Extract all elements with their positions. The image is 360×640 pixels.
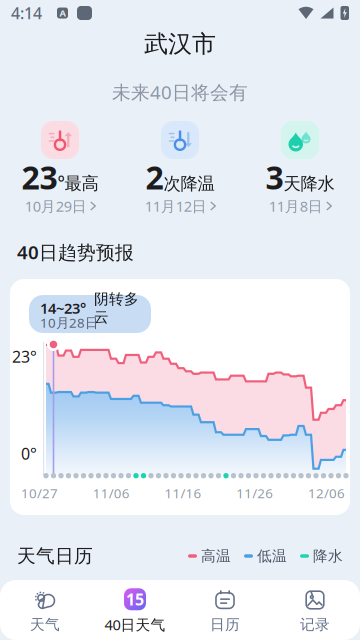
staticText: °最高 <box>57 171 98 194</box>
staticText: 11/16 <box>164 484 201 502</box>
staticText: A <box>59 7 65 19</box>
staticText: 40日天气 <box>104 615 165 634</box>
staticText: 0° <box>21 443 37 464</box>
staticText: 10月28日 <box>40 314 98 331</box>
button[interactable]: 记录 <box>270 580 360 640</box>
staticText: 天气日历 <box>17 544 93 567</box>
button[interactable]: 2 <box>120 121 240 213</box>
staticText: 10月29日 <box>25 196 87 216</box>
staticText: 阴转多云 <box>94 290 139 326</box>
button[interactable]: 15 <box>90 580 180 640</box>
staticText: 15 <box>126 589 144 610</box>
staticText: 4:14 <box>11 2 42 24</box>
staticText: 11月12日 <box>145 196 207 216</box>
staticText: 天降水 <box>283 173 334 194</box>
staticText: 10/27 <box>21 484 58 502</box>
staticText: 11/26 <box>236 484 273 502</box>
staticText: 23° <box>12 346 37 367</box>
staticText: 11月8日 <box>269 196 323 216</box>
staticText: 3 <box>265 156 283 198</box>
staticText: 23 <box>21 156 57 198</box>
staticText: 记录 <box>300 615 330 633</box>
button[interactable]: 3 <box>240 121 360 213</box>
staticText: 次降温 <box>163 173 214 194</box>
staticText: 11/06 <box>93 484 130 502</box>
staticText: 12/06 <box>308 484 345 502</box>
button[interactable]: 23 <box>0 121 120 213</box>
staticText: 降水 <box>313 547 343 565</box>
staticText: 低温 <box>257 547 287 565</box>
staticText: 日历 <box>210 615 240 633</box>
staticText: 14~23° <box>40 298 86 318</box>
button[interactable]: 日历 <box>180 580 270 640</box>
button[interactable]: 天气 <box>0 580 90 640</box>
staticText: 武汉市 <box>144 29 216 59</box>
staticText: 高温 <box>201 547 231 565</box>
staticText: 40日趋势预报 <box>17 240 134 264</box>
staticText: 未来40日将会有 <box>112 80 248 104</box>
staticText: 2 <box>145 156 163 198</box>
staticText: 天气 <box>30 615 60 633</box>
